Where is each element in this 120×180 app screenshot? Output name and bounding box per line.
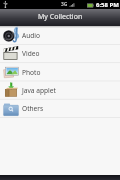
other: Java applet: [3, 82, 19, 98]
staticText: Java applet: [22, 86, 56, 95]
button[interactable]: Audio: [0, 26, 120, 44]
staticText: Audio: [22, 31, 41, 40]
staticText: My Collection: [38, 12, 83, 22]
other: Others: [3, 100, 19, 116]
staticText: Video: [22, 49, 40, 58]
button[interactable]: Java applet: [0, 81, 120, 99]
staticText: Photo: [22, 68, 41, 77]
button[interactable]: Others: [0, 99, 120, 117]
staticText: 6:58 PM: [96, 1, 119, 9]
staticText: Others: [22, 104, 44, 113]
staticText: 3G: [61, 1, 68, 8]
other: Video: [3, 45, 19, 61]
other: Photo: [3, 64, 19, 80]
button[interactable]: Photo: [0, 63, 120, 81]
other: Audio: [3, 27, 19, 43]
button[interactable]: Video: [0, 44, 120, 62]
